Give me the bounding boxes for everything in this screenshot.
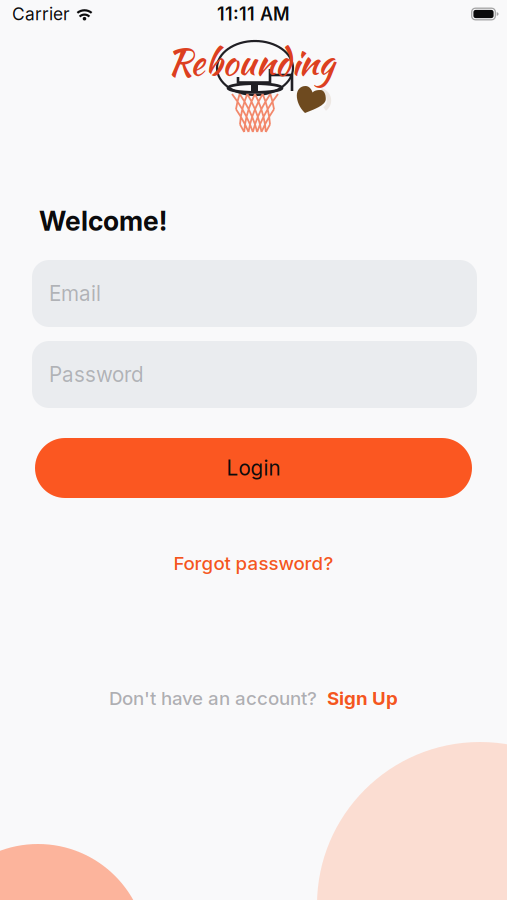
button[interactable]: Login	[35, 438, 472, 498]
staticText: Rebounding	[167, 36, 334, 88]
staticText: Login	[226, 455, 280, 480]
staticText: 11:11 AM	[217, 3, 290, 25]
button[interactable]: Forgot password?	[173, 552, 333, 575]
staticText: Sign Up	[327, 687, 398, 710]
staticText: Don't have an account?	[109, 687, 317, 710]
staticText: Welcome!	[39, 205, 167, 237]
button[interactable]: Sign Up	[327, 687, 398, 710]
staticText: Email	[49, 281, 101, 306]
staticText: Carrier	[12, 3, 70, 24]
staticText: Forgot password?	[173, 552, 333, 575]
staticText: Password	[49, 362, 144, 387]
